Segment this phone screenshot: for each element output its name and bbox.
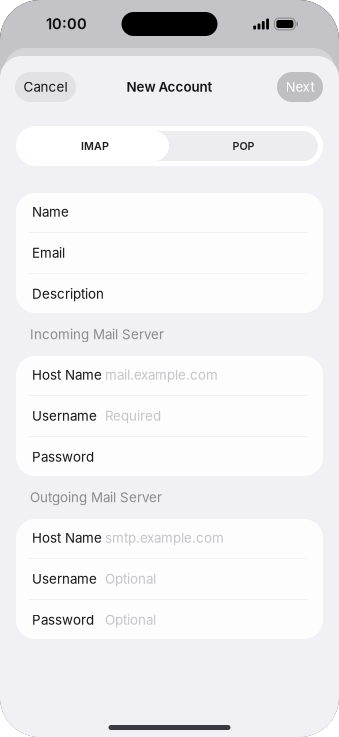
button[interactable]: Username (16, 396, 323, 436)
staticText: Description (32, 286, 104, 302)
staticText: Cancel (23, 79, 67, 95)
button[interactable]: Host Name (16, 518, 323, 558)
staticText: Host Name (32, 367, 102, 383)
staticText: Optional (105, 612, 156, 628)
staticText: Incoming Mail Server (30, 326, 164, 342)
staticText: Username (32, 571, 97, 587)
staticText: Next (285, 79, 314, 95)
button[interactable]: Name (16, 192, 323, 232)
staticText: Optional (105, 571, 156, 587)
staticText: POP (232, 139, 254, 152)
button[interactable]: Description (16, 274, 323, 314)
button[interactable]: Cancel (15, 72, 76, 102)
staticText: Password (32, 449, 94, 465)
staticText: smtp.example.com (105, 530, 224, 546)
button[interactable]: Password (16, 437, 323, 477)
staticText: Host Name (32, 530, 102, 546)
staticText: Name (32, 204, 69, 220)
button[interactable]: Email (16, 233, 323, 273)
button[interactable]: IMAP (21, 131, 169, 161)
staticText: 10:00 (46, 15, 87, 33)
staticText: Outgoing Mail Server (30, 489, 162, 505)
staticText: Required (105, 408, 161, 424)
staticText: IMAP (81, 139, 109, 152)
button[interactable]: Next (277, 72, 323, 102)
staticText: Password (32, 612, 94, 628)
staticText: mail.example.com (105, 367, 218, 383)
button[interactable]: POP (169, 131, 318, 161)
button[interactable]: Username (16, 559, 323, 599)
staticText: Username (32, 408, 97, 424)
button[interactable]: Host Name (16, 355, 323, 395)
staticText: Email (32, 245, 65, 261)
staticText: New Account (126, 79, 212, 95)
button[interactable]: Password (16, 600, 323, 640)
